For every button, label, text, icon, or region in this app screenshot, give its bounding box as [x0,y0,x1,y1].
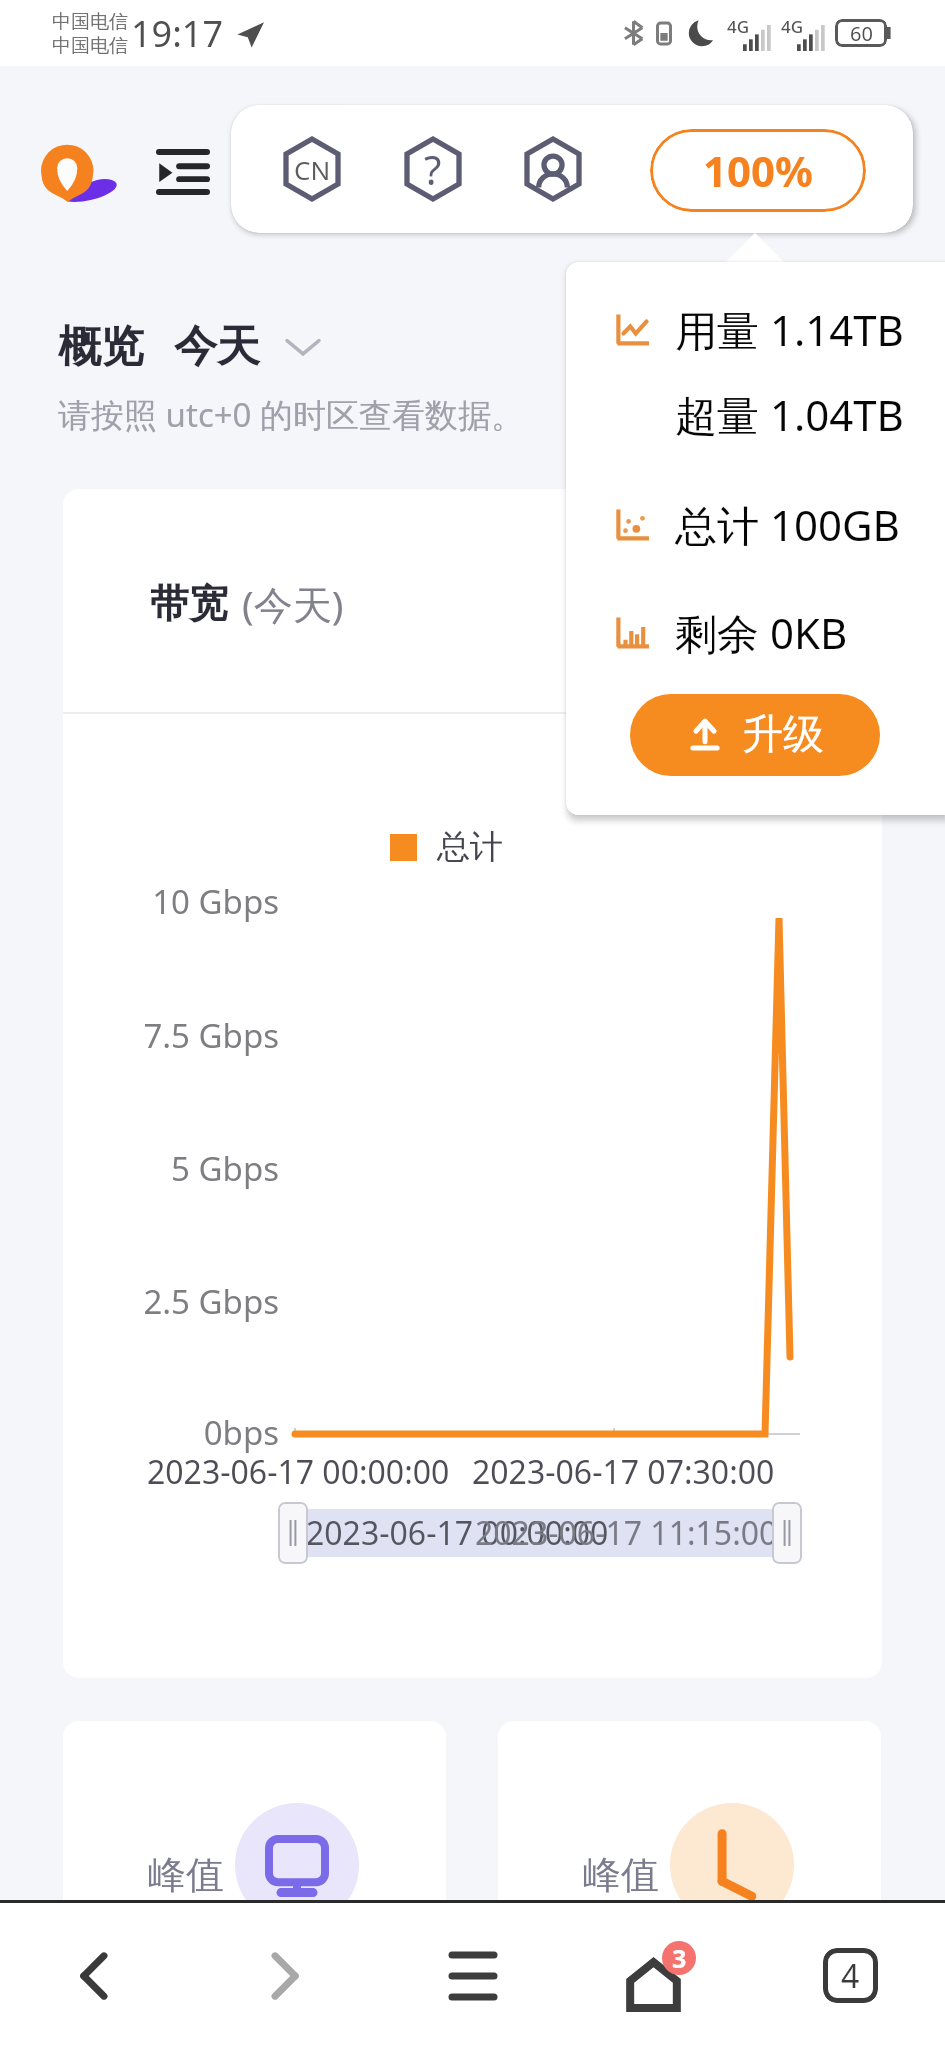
button[interactable]: 峰值 [498,1721,881,2021]
staticText: 中国电信 [52,10,128,34]
button[interactable]: Back [0,1903,189,2048]
staticText: 100% [703,142,813,199]
staticText: 超量 1.04TB [675,386,904,443]
button[interactable]: Tabs [756,1903,945,2048]
staticText: 0bps [63,1410,279,1455]
button[interactable]: 峰值 [63,1721,446,2021]
button[interactable]: Menu [378,1903,567,2048]
staticText: 今天 [174,320,260,374]
staticText: ? [424,142,442,196]
staticText: 2023-06-17 00:00:00 [147,1450,450,1494]
button[interactable]: 概览 [58,320,320,374]
button[interactable]: Logo [41,144,117,203]
staticText: 峰值 [583,1851,659,1899]
staticText: 2023-06-17 07:30:00 [472,1450,775,1494]
button[interactable]: Forward [189,1903,378,2048]
button[interactable]: 100% [650,129,866,212]
staticText: 3 [672,1941,687,1975]
staticText: (今天) [242,577,344,630]
staticText: 4 [841,1954,860,1998]
staticText: 中国电信 [52,34,128,58]
button[interactable]: Help [394,130,472,208]
staticText: 2023-06-17 00:00:00 [306,1511,609,1555]
staticText: 概览 [58,320,144,374]
button[interactable]: 升级 [630,694,880,776]
staticText: 5 Gbps [63,1146,279,1191]
staticText: 60 [850,20,873,47]
staticText: 2023-06-17 11:15:00 [475,1511,778,1555]
staticText: 带宽 [150,579,228,628]
button[interactable]: Menu [159,149,207,195]
staticText: 19:17 [131,9,224,58]
button[interactable]: Language [273,130,351,208]
staticText: 7.5 Gbps [63,1013,279,1058]
staticText: 用量 1.14TB [675,301,904,358]
staticText: 10 Gbps [63,879,279,924]
staticText: 2.5 Gbps [63,1279,279,1324]
staticText: 总计 [437,826,503,868]
button[interactable]: Account [514,130,592,208]
staticText: 峰值 [148,1851,224,1899]
button[interactable]: Home [567,1903,756,2048]
staticText: 总计 100GB [675,496,900,553]
staticText: 请按照 utc+0 的时区查看数据。 [58,392,525,437]
staticText: CN [294,152,331,187]
staticText: 升级 [742,709,824,761]
staticText: 4G [727,15,750,38]
staticText: 剩余 0KB [675,604,848,661]
staticText: 4G [781,15,804,38]
